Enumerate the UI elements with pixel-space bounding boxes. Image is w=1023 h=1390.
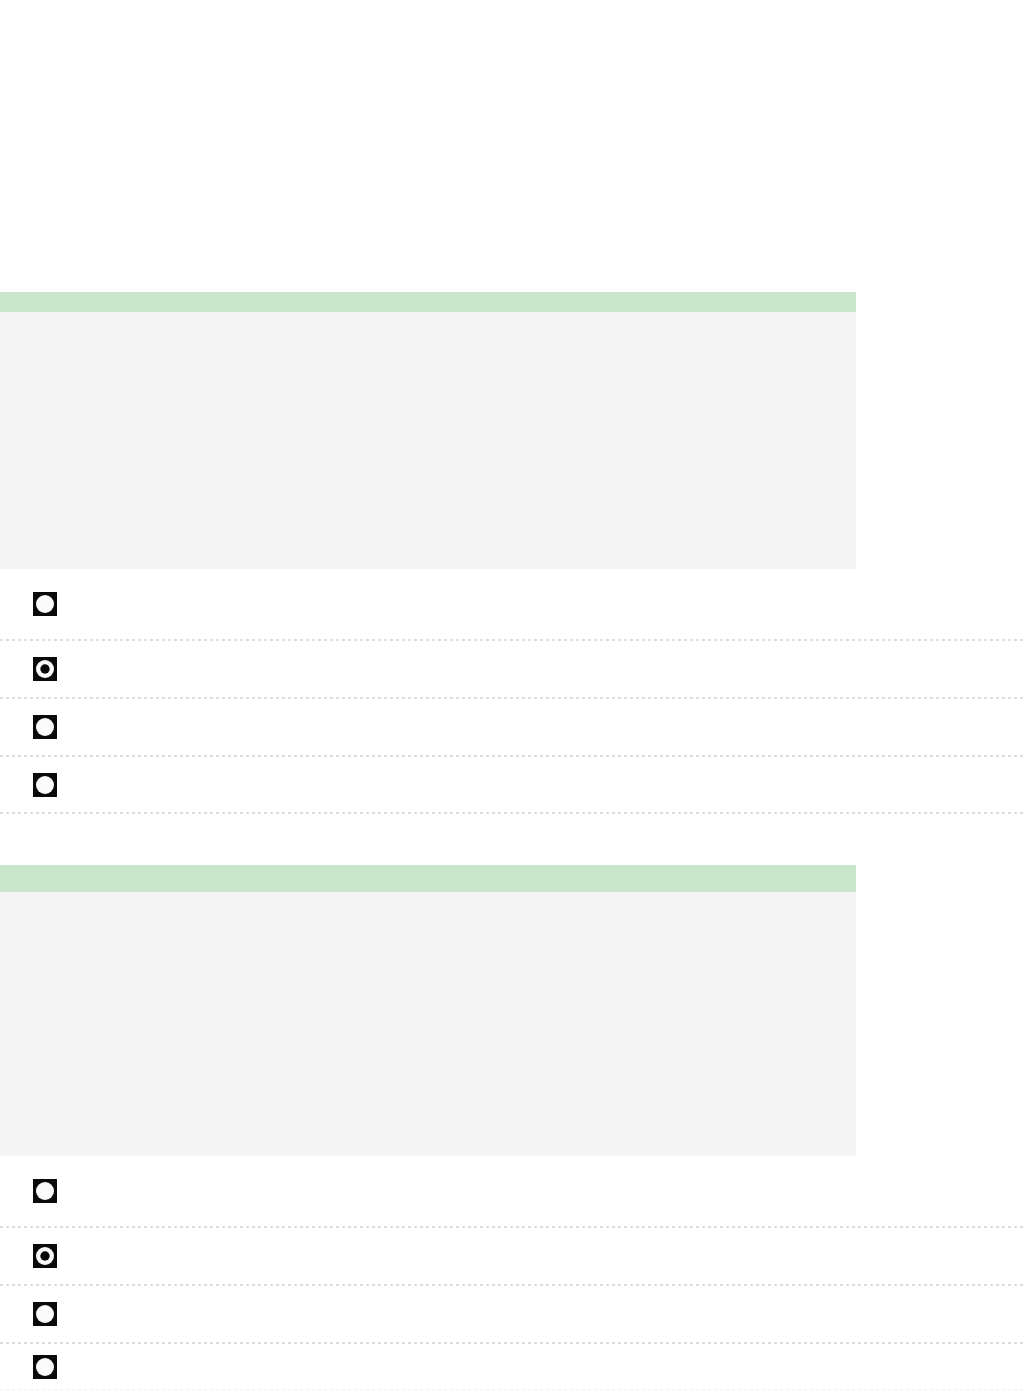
other: Select option [33,715,57,739]
other: Select option [33,1244,57,1268]
other: Select option [33,592,57,616]
button[interactable]: Select option [0,569,1023,639]
other: Select option [33,1355,57,1379]
button[interactable]: Select option [0,641,1023,697]
button[interactable]: Select option [0,757,1023,812]
other: Select option [33,657,57,681]
button[interactable]: Select option [0,1228,1023,1284]
button[interactable]: Select option [0,1286,1023,1342]
button[interactable]: Select option [0,1156,1023,1226]
button[interactable]: Select option [0,699,1023,755]
other: Select option [33,773,57,797]
other: Select option [33,1179,57,1203]
other: Select option [33,1302,57,1326]
button[interactable]: Select option [0,1344,1023,1390]
